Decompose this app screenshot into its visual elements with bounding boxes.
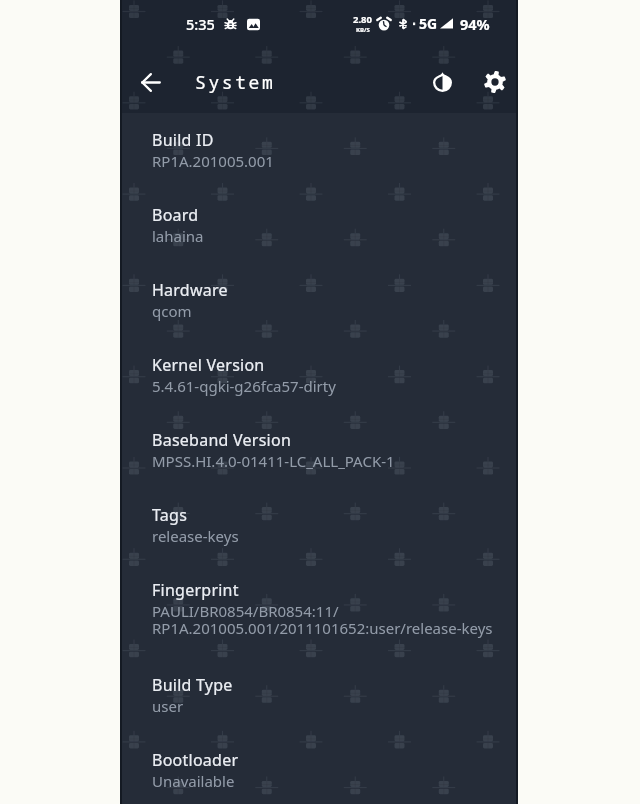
staticText: Board — [152, 204, 199, 226]
button[interactable]: Back — [128, 60, 172, 104]
button[interactable]: Build Type — [120, 674, 518, 749]
staticText: Tags — [152, 504, 188, 526]
staticText: System — [195, 70, 276, 95]
staticText: qcom — [152, 301, 192, 321]
staticText: Build ID — [152, 129, 214, 151]
button[interactable]: Board — [120, 204, 518, 279]
button[interactable]: Fingerprint — [120, 579, 518, 674]
button[interactable]: Settings — [473, 60, 517, 104]
staticText: KB/S — [356, 26, 370, 34]
staticText: 5.4.61-qgki-g26fca57-dirty — [152, 376, 336, 396]
staticText: 5G — [419, 14, 438, 33]
button[interactable]: Hardware — [120, 279, 518, 354]
button[interactable]: Kernel Version — [120, 354, 518, 429]
button[interactable]: Toggle theme — [420, 60, 464, 104]
staticText: user — [152, 696, 184, 716]
staticText: Baseband Version — [152, 429, 292, 451]
staticText: Fingerprint — [152, 579, 239, 601]
staticText: Kernel Version — [152, 354, 265, 376]
staticText: Build Type — [152, 674, 233, 696]
button[interactable]: Tags — [120, 504, 518, 579]
button[interactable]: Bootloader — [120, 749, 518, 804]
staticText: MPSS.HI.4.0-01411-LC_ALL_PACK-1 — [152, 451, 395, 471]
staticText: 2.80 — [353, 13, 372, 26]
button[interactable]: Build ID — [120, 129, 518, 204]
staticText: 94% — [460, 14, 490, 34]
staticText: RP1A.201005.001 — [152, 151, 274, 171]
staticText: release-keys — [152, 526, 239, 546]
staticText: 5:35 — [186, 14, 215, 34]
staticText: lahaina — [152, 226, 204, 246]
staticText: Bootloader — [152, 749, 239, 771]
staticText: PAULI/BR0854/BR0854:11/ — [152, 601, 339, 621]
staticText: Unavailable — [152, 771, 235, 791]
staticText: Hardware — [152, 279, 228, 301]
button[interactable]: Baseband Version — [120, 429, 518, 504]
staticText: RP1A.201005.001/2011101652:user/release-… — [152, 618, 493, 638]
